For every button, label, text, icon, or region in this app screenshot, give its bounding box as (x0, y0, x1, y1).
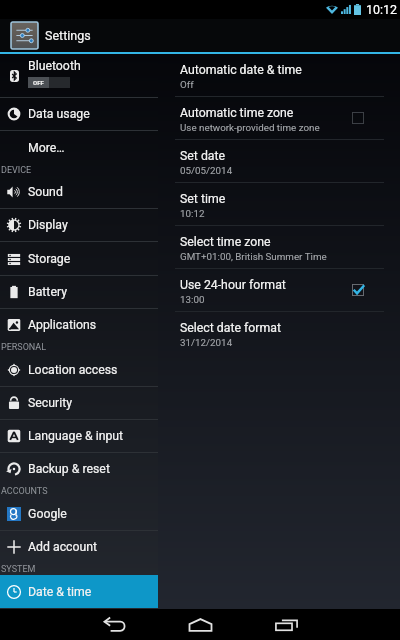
staticText: SYSTEM (1, 564, 36, 575)
staticText: Bluetooth (28, 59, 81, 73)
staticText: Select date format (180, 321, 282, 335)
staticText: Automatic time zone (180, 106, 294, 120)
staticText: Sound (28, 185, 63, 199)
button[interactable]: Use 24-hour format (158, 269, 400, 311)
button[interactable]: Applications (0, 309, 158, 341)
staticText: GMT+01:00, British Summer Time (180, 251, 327, 262)
staticText: Set time (180, 192, 226, 206)
staticText: Select time zone (180, 235, 271, 249)
button[interactable]: Select date format (158, 312, 400, 354)
staticText: Add account (28, 540, 98, 554)
button[interactable]: Security (0, 387, 158, 419)
button[interactable]: Select time zone (158, 226, 400, 268)
staticText: Language & input (28, 429, 124, 443)
button[interactable]: More… (0, 131, 158, 164)
button[interactable]: Add account (0, 531, 158, 563)
staticText: PERSONAL (1, 342, 47, 353)
button[interactable]: Home (176, 609, 224, 640)
staticText: Date & time (28, 585, 92, 599)
staticText: Set date (180, 149, 226, 163)
staticText: 13:00 (180, 294, 205, 305)
staticText: Storage (28, 252, 71, 266)
staticText: 05/05/2014 (180, 165, 233, 176)
button[interactable]: Data usage (0, 98, 158, 130)
staticText: Applications (28, 318, 97, 332)
button[interactable]: Display (0, 209, 158, 241)
staticText: Security (28, 396, 73, 410)
staticText: 10:12 (366, 2, 398, 17)
staticText: Battery (28, 285, 68, 299)
button[interactable]: Recent apps (262, 609, 310, 640)
staticText: Backup & reset (28, 462, 110, 476)
button[interactable]: Battery (0, 276, 158, 308)
staticText: Use 24-hour format (180, 278, 286, 292)
staticText: Data usage (28, 107, 90, 121)
button[interactable]: Back (91, 609, 139, 640)
button[interactable]: Automatic date & time (158, 54, 400, 96)
staticText: Display (28, 218, 68, 232)
staticText: Google (28, 507, 67, 521)
button[interactable]: Backup & reset (0, 453, 158, 485)
button[interactable]: Location access (0, 353, 158, 386)
button[interactable]: Bluetooth (0, 54, 158, 97)
staticText: 10:12 (180, 208, 205, 219)
staticText: ACCOUNTS (1, 486, 48, 497)
button[interactable]: Storage (0, 242, 158, 275)
button[interactable]: Google (0, 498, 158, 530)
staticText: Location access (28, 363, 118, 377)
staticText: Automatic date & time (180, 63, 302, 77)
staticText: Off (180, 79, 194, 90)
button[interactable]: Sound (0, 176, 158, 208)
button[interactable]: Date & time (0, 575, 158, 608)
button[interactable]: Automatic time zone (158, 97, 400, 139)
staticText: DEVICE (1, 165, 32, 176)
staticText: OFF (33, 79, 44, 86)
staticText: Settings (45, 28, 91, 43)
button[interactable]: Set time (158, 183, 400, 225)
button[interactable]: Language & input (0, 420, 158, 452)
staticText: 31/12/2014 (180, 337, 233, 348)
staticText: Use network-provided time zone (180, 122, 320, 133)
staticText: More… (28, 141, 65, 155)
button[interactable]: Set date (158, 140, 400, 182)
